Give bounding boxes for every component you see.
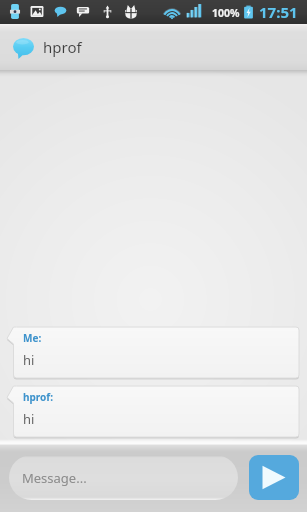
staticText: Message... [22,469,87,487]
button[interactable]: Message... [9,455,238,500]
staticText: hi [23,410,35,428]
staticText: Me: [23,331,42,345]
staticText: 17:51 [259,2,298,22]
staticText: hprof: [23,390,54,404]
staticText: 100% [212,6,240,20]
button[interactable]: Send [249,455,299,500]
staticText: hi [23,351,35,369]
button[interactable]: hprof: [7,386,299,437]
button[interactable]: Me: [7,327,299,378]
staticText: hprof [43,37,82,57]
button[interactable]: hprof [0,24,307,70]
